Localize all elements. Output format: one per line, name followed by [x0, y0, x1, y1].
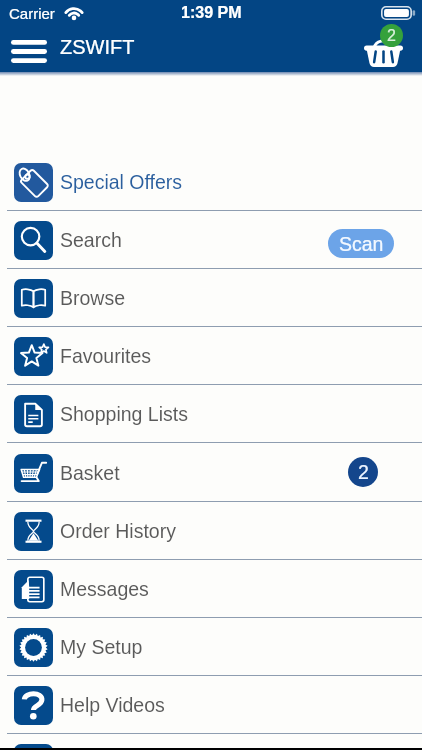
- staticText: Scan: [339, 233, 384, 255]
- staticText: Special Offers: [60, 171, 183, 193]
- staticText: 2: [387, 27, 396, 45]
- staticText: Order History: [60, 520, 176, 542]
- button[interactable]: My Setup: [0, 618, 422, 676]
- button[interactable]: Shopping Lists: [0, 385, 422, 443]
- staticText: Shopping Lists: [60, 403, 188, 425]
- staticText: Messages: [60, 578, 149, 600]
- button[interactable]: Open navigation menu: [3, 28, 55, 71]
- button[interactable]: Basket, 2 items: [367, 29, 411, 72]
- button[interactable]: Order History: [0, 502, 422, 560]
- button[interactable]: Search: [0, 211, 422, 269]
- staticText: Help Videos: [60, 694, 165, 716]
- staticText: 2: [358, 461, 369, 483]
- button[interactable]: Browse: [0, 269, 422, 327]
- staticText: Search: [60, 229, 122, 251]
- button[interactable]: Basket: [0, 444, 422, 502]
- staticText: Favourites: [60, 345, 152, 367]
- button[interactable]: Help Videos: [0, 676, 422, 734]
- button[interactable]: Special Offers: [0, 153, 422, 211]
- staticText: My Setup: [60, 636, 143, 658]
- button[interactable]: Favourites: [0, 327, 422, 385]
- staticText: Basket: [60, 462, 120, 484]
- staticText: Carrier: [9, 5, 55, 22]
- button[interactable]: Messages: [0, 560, 422, 618]
- button[interactable]: Scan: [328, 229, 394, 258]
- button[interactable]: Contact Us: [0, 734, 422, 750]
- staticText: 1:39 PM: [181, 4, 242, 22]
- staticText: Browse: [60, 287, 126, 309]
- staticText: ZSWIFT: [60, 36, 135, 58]
